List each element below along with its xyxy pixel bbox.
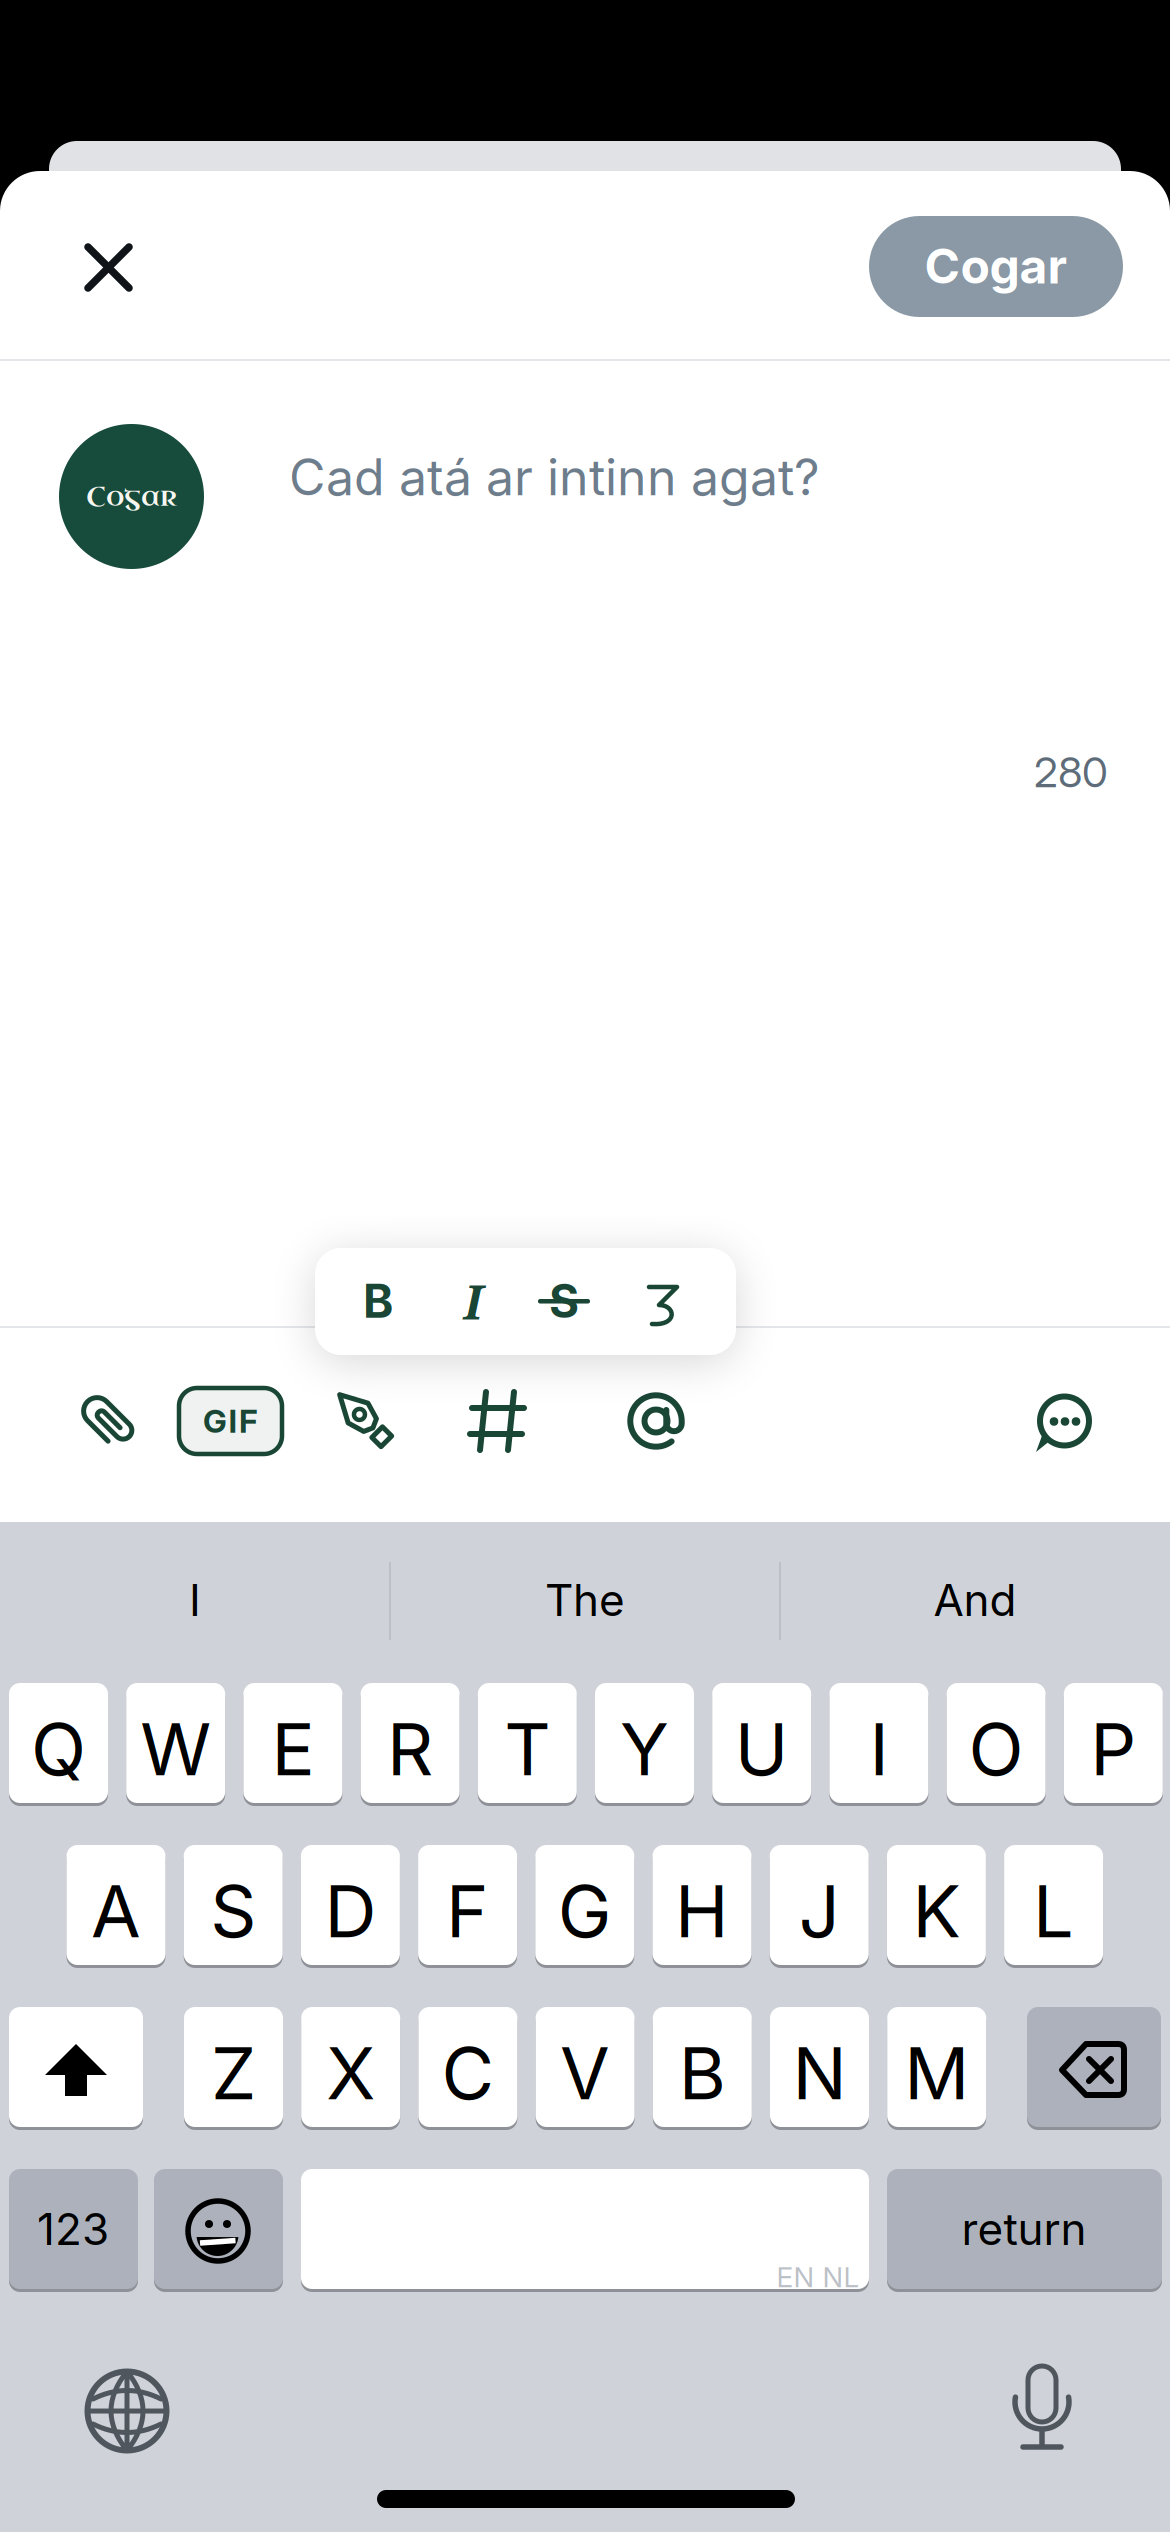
staticText: P	[1090, 1705, 1136, 1792]
staticText: L	[1033, 1867, 1074, 1954]
staticText: return	[961, 2202, 1086, 2256]
staticText: Cad atá ar intinn agat?	[289, 447, 820, 507]
staticText: B	[363, 1273, 393, 1329]
staticText: R	[387, 1705, 433, 1792]
staticText: M	[904, 2029, 969, 2116]
staticText: V	[560, 2029, 610, 2116]
staticText: W	[140, 1705, 211, 1792]
staticText: B	[679, 2029, 726, 2116]
staticText: I	[869, 1705, 888, 1792]
staticText: D	[324, 1867, 376, 1954]
staticText: The	[545, 1573, 625, 1627]
staticText: O	[969, 1705, 1024, 1792]
staticText: GIF	[203, 1402, 258, 1440]
staticText: A	[91, 1867, 141, 1954]
staticText: C	[441, 2029, 494, 2116]
staticText: Cogar	[86, 479, 177, 515]
staticText: 123	[37, 2202, 109, 2256]
staticText: S	[210, 1867, 256, 1954]
staticText: T	[504, 1705, 550, 1792]
staticText: Z	[211, 2029, 256, 2116]
staticText: J	[799, 1867, 840, 1954]
staticText: S	[549, 1273, 579, 1329]
staticText: U	[735, 1705, 789, 1792]
staticText: EN NL	[776, 2260, 859, 2294]
staticText: X	[326, 2029, 375, 2116]
staticText: G	[558, 1867, 612, 1954]
staticText: I	[189, 1573, 201, 1627]
staticText: And	[933, 1573, 1016, 1627]
staticText: Y	[620, 1705, 669, 1792]
staticText: Q	[31, 1705, 86, 1792]
staticText: N	[792, 2029, 846, 2116]
staticText: 280	[1034, 747, 1108, 797]
staticText: K	[912, 1867, 960, 1954]
staticText: F	[446, 1867, 489, 1954]
staticText: E	[271, 1705, 314, 1792]
staticText: I	[463, 1268, 482, 1334]
staticText: H	[675, 1867, 729, 1954]
staticText: Cogar	[924, 237, 1067, 295]
